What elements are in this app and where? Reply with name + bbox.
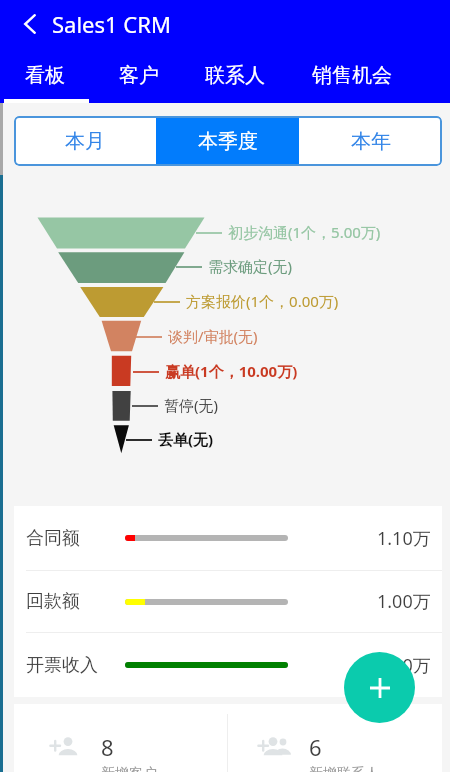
staticText: 1.10万 xyxy=(377,526,431,551)
button[interactable]: 本月 xyxy=(14,116,156,166)
button[interactable]: 本年 xyxy=(299,116,442,166)
staticText: 1.00万 xyxy=(377,653,431,678)
staticText: 新增客户 xyxy=(101,765,157,772)
staticText: 回款额 xyxy=(26,590,80,613)
staticText: 本季度 xyxy=(198,129,258,154)
staticText: 谈判/审批(无) xyxy=(168,326,258,346)
staticText: 1.00万 xyxy=(377,589,431,614)
staticText: 方案报价(1个，0.00万) xyxy=(186,291,339,311)
button[interactable]: 8 xyxy=(14,704,227,772)
staticText: Sales1 CRM xyxy=(52,9,171,39)
staticText: 本月 xyxy=(65,129,105,154)
button[interactable]: 客户 xyxy=(95,56,183,103)
staticText: 联系人 xyxy=(205,63,265,88)
staticText: 初步沟通(1个，5.00万) xyxy=(228,222,381,242)
button[interactable]: 6 xyxy=(228,704,442,772)
button[interactable]: 合同额 xyxy=(14,506,442,570)
staticText: 合同额 xyxy=(26,527,80,550)
button[interactable]: Back xyxy=(8,2,52,46)
button[interactable]: 回款额 xyxy=(14,571,442,632)
button[interactable]: 联系人 xyxy=(186,56,284,103)
staticText: 新增联系人 xyxy=(309,765,379,772)
staticText: 丢单(无) xyxy=(158,429,214,449)
staticText: 客户 xyxy=(119,63,159,88)
button[interactable]: 本季度 xyxy=(156,116,299,166)
staticText: 赢单(1个，10.00万) xyxy=(165,361,298,381)
button[interactable]: 看板 xyxy=(2,56,87,103)
staticText: 看板 xyxy=(25,63,65,88)
button[interactable]: 开票收入 xyxy=(14,633,442,697)
staticText: 销售机会 xyxy=(312,63,392,88)
staticText: 暂停(无) xyxy=(164,395,219,415)
button[interactable]: Add xyxy=(344,652,415,723)
staticText: 6 xyxy=(309,732,322,762)
button[interactable]: 销售机会 xyxy=(297,56,407,103)
staticText: 本年 xyxy=(351,129,391,154)
staticText: 8 xyxy=(101,732,114,762)
staticText: 开票收入 xyxy=(26,654,98,677)
staticText: 需求确定(无) xyxy=(208,256,293,276)
